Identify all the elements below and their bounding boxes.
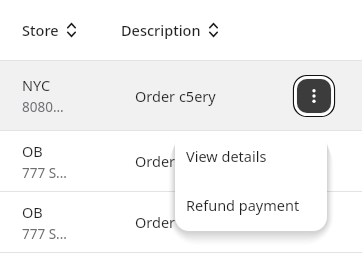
- staticText: 777 S...: [22, 164, 67, 182]
- button[interactable]: Refund payment: [175, 181, 327, 229]
- staticText: OB: [22, 202, 43, 222]
- button[interactable]: Store: [22, 20, 76, 40]
- button[interactable]: OB: [0, 131, 362, 191]
- staticText: Refund payment: [186, 195, 300, 215]
- staticText: View details: [186, 146, 267, 166]
- button[interactable]: More options: [293, 75, 335, 117]
- button[interactable]: OB: [0, 192, 362, 252]
- staticText: NYC: [22, 75, 51, 95]
- staticText: Description: [121, 20, 201, 40]
- staticText: 777 S...: [22, 225, 67, 243]
- staticText: Order c5ery: [135, 86, 216, 106]
- button[interactable]: View details: [175, 131, 327, 181]
- staticText: Store: [22, 20, 59, 40]
- button[interactable]: NYC: [0, 61, 362, 130]
- staticText: OB: [22, 141, 43, 161]
- staticText: 8080...: [22, 98, 64, 116]
- staticText: Order: [135, 212, 176, 232]
- button[interactable]: Description: [121, 20, 218, 40]
- staticText: Order: [135, 151, 176, 171]
